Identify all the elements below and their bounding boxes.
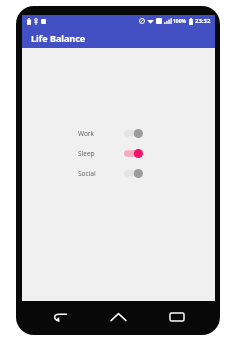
other: Off (122, 128, 144, 139)
staticText: Sleep (78, 149, 120, 158)
staticText: 23:32 (195, 17, 211, 25)
button[interactable]: Home (103, 302, 133, 332)
other: Off (122, 168, 144, 179)
staticText: Social (78, 169, 120, 178)
button[interactable]: Back (45, 302, 75, 332)
button[interactable]: Recent apps (162, 302, 192, 332)
other: On (122, 148, 144, 159)
staticText: Work (78, 129, 120, 138)
staticText: Life Balance (31, 32, 86, 44)
staticText: 100% (173, 18, 187, 25)
button[interactable]: Sleep (78, 147, 150, 159)
button[interactable]: Social (78, 167, 150, 179)
button[interactable]: Work (78, 127, 150, 139)
